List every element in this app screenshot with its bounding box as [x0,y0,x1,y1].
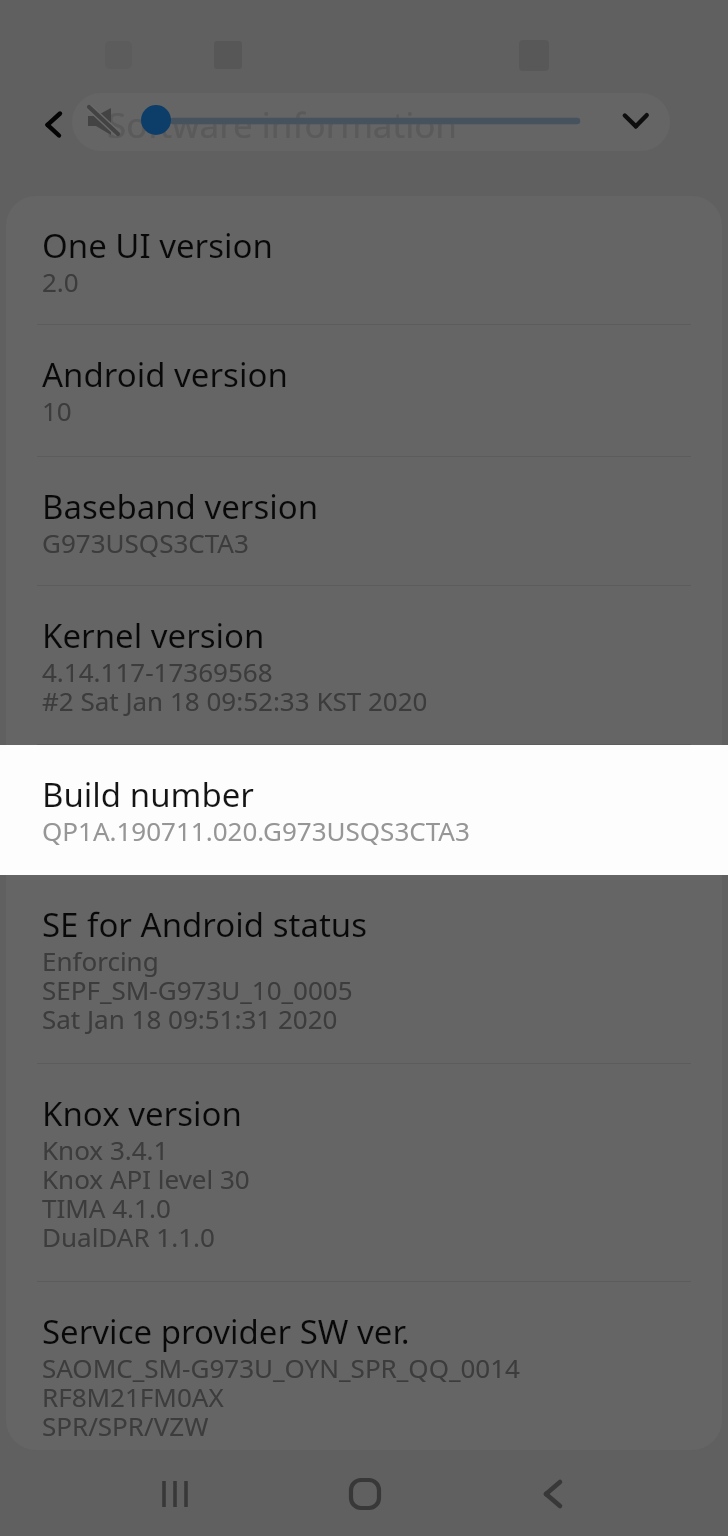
button[interactable]: Baseband version [6,457,722,586]
staticText: Android version [42,352,288,397]
staticText: Enforcing SEPF_SM-G973U_10_0005 Sat Jan … [42,943,353,1036]
staticText: Baseband version [42,484,319,529]
button[interactable]: Navigate up [24,100,74,150]
button[interactable]: Expand volume controls [612,96,660,144]
staticText: Kernel version [42,613,265,658]
button[interactable]: Build number [6,745,722,875]
button[interactable]: Back [509,1450,597,1536]
staticText: QP1A.190711.020.G973USQS3CTA3 [42,813,470,848]
button[interactable]: Android version [6,325,722,457]
button[interactable]: SE for Android status [6,875,722,1064]
button[interactable]: Recent apps [131,1450,219,1536]
button[interactable]: Knox version [6,1064,722,1282]
staticText: Software information [107,101,457,149]
staticText: Knox 3.4.1 Knox API level 30 TIMA 4.1.0 … [42,1132,250,1254]
button[interactable]: One UI version [6,196,722,325]
staticText: QP1A.190711.020.G973USQS3CTA3 [42,813,470,848]
staticText: 10 [42,393,72,428]
staticText: Service provider SW ver. [42,1309,410,1354]
staticText: One UI version [42,223,273,268]
staticText: SAOMC_SM-G973U_OYN_SPR_QQ_0014 RF8M21FM0… [42,1350,520,1443]
staticText: 2.0 [42,264,79,299]
staticText: Build number [42,772,254,817]
button[interactable]: Home [321,1450,409,1536]
staticText: G973USQS3CTA3 [42,525,249,560]
button[interactable]: Service provider SW ver. [6,1282,722,1442]
staticText: 4.14.117-17369568 #2 Sat Jan 18 09:52:33… [42,654,428,718]
staticText: Knox version [42,1091,242,1136]
button[interactable] [72,93,670,151]
button[interactable]: Build number [0,745,728,875]
staticText: SE for Android status [42,902,368,947]
button[interactable]: Kernel version [6,586,722,745]
staticText: Build number [42,772,254,817]
